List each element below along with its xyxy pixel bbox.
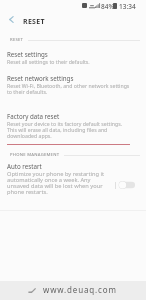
staticText: 84% [101, 2, 114, 11]
button[interactable]: Factory data reset [0, 112, 146, 139]
button[interactable]: Reset settings [0, 50, 146, 65]
staticText: RESET [10, 37, 24, 43]
staticText: Reset your device to its factory default… [7, 120, 132, 139]
staticText: Auto restart [7, 162, 42, 170]
staticText: 13:34 [119, 2, 136, 11]
button[interactable]: Auto restart [0, 160, 146, 212]
staticText: Reset Wi-Fi, Bluetooth, and other networ… [7, 82, 132, 95]
staticText: www.deuaq.com [43, 284, 117, 295]
staticText: RESET [23, 17, 45, 27]
staticText: Reset network settings [7, 74, 74, 82]
staticText: Optimize your phone by restarting it aut… [7, 170, 107, 196]
staticText: Reset settings [7, 50, 48, 58]
staticText: Factory data reset [7, 112, 60, 120]
button[interactable]: Reset network settings [0, 74, 146, 95]
button[interactable]: Back [4, 12, 19, 27]
staticText: PHONE MANAGEMENT [10, 152, 60, 158]
button[interactable]: Auto restart switch [117, 178, 139, 192]
staticText: Reset all settings to their defaults. [7, 58, 90, 65]
